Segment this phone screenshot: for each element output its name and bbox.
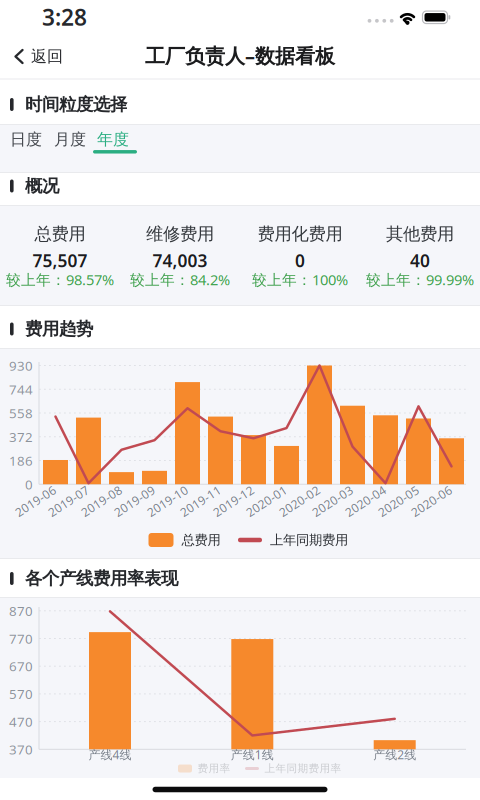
staticText: 2019-11 [177, 493, 223, 509]
staticText: 570 [9, 685, 33, 703]
staticText: 744 [9, 380, 33, 398]
staticText: 3:28 [42, 2, 87, 32]
staticText: 总费用 [34, 223, 85, 245]
staticText: 较上年：100% [252, 270, 348, 289]
staticText: 74,003 [152, 249, 207, 272]
staticText: 上年同期费用率 [264, 762, 341, 775]
staticText: 186 [9, 452, 33, 469]
staticText: 产线2线 [373, 746, 416, 762]
staticText: 时间粒度选择 [25, 94, 127, 115]
staticText: 0 [295, 249, 305, 272]
staticText: 2019-08 [78, 493, 124, 509]
staticText: 2019-09 [111, 493, 157, 509]
staticText: 总费用 [181, 532, 220, 548]
staticText: 2019-10 [144, 493, 190, 509]
staticText: 费用化费用 [257, 223, 342, 245]
staticText: 370 [9, 740, 33, 758]
staticText: 40 [410, 249, 430, 272]
staticText: 费用趋势 [25, 318, 93, 340]
staticText: 2020-04 [342, 493, 388, 509]
staticText: 较上年：99.99% [366, 270, 474, 289]
staticText: 2020-01 [243, 493, 289, 509]
button[interactable]: 年度 [91, 122, 135, 156]
staticText: 2020-06 [408, 493, 454, 509]
staticText: 费用率 [197, 762, 230, 775]
staticText: 维修费用 [146, 223, 214, 245]
staticText: 75,507 [32, 249, 87, 272]
staticText: 较上年：98.57% [6, 270, 114, 289]
staticText: 工厂负责人–数据看板 [145, 42, 335, 69]
staticText: 各个产线费用率表现 [25, 568, 178, 589]
staticText: 930 [9, 357, 33, 374]
button[interactable]: 日度 [4, 122, 48, 156]
staticText: 其他费用 [386, 223, 454, 245]
staticText: 月度 [54, 130, 86, 149]
staticText: 年度 [97, 130, 129, 149]
staticText: 670 [9, 657, 33, 675]
staticText: 770 [9, 630, 33, 647]
staticText: 2019-06 [12, 493, 58, 509]
staticText: 470 [9, 713, 33, 730]
staticText: 2020-05 [375, 493, 421, 509]
staticText: 0 [25, 475, 33, 493]
staticText: 2019-07 [45, 493, 91, 509]
button[interactable]: 月度 [48, 122, 92, 156]
button[interactable]: 上年同期费用 [238, 532, 348, 548]
staticText: 日度 [10, 130, 42, 149]
staticText: 558 [9, 404, 33, 422]
staticText: 产线1线 [231, 746, 274, 762]
button[interactable]: 返回 [13, 34, 87, 78]
staticText: 870 [9, 602, 33, 620]
staticText: 概况 [25, 175, 59, 197]
button[interactable]: 总费用 [148, 532, 220, 548]
staticText: 2020-02 [276, 493, 322, 509]
staticText: 返回 [31, 47, 63, 66]
staticText: 较上年：84.2% [130, 270, 230, 289]
staticText: 产线4线 [88, 746, 131, 762]
staticText: 上年同期费用 [270, 532, 348, 548]
staticText: 2019-12 [210, 493, 256, 509]
staticText: 2020-03 [309, 493, 355, 509]
staticText: 372 [9, 428, 33, 446]
